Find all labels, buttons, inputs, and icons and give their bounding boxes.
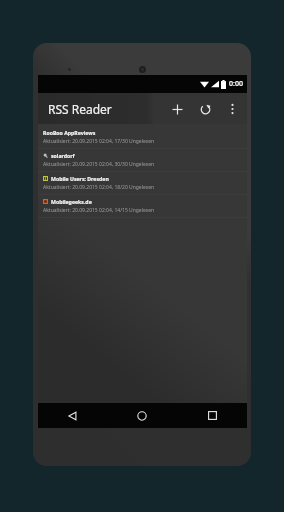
button[interactable]: Add feed	[163, 95, 191, 123]
staticText: Aktualisiert: 20.09.2015 02:04, 18/20 Un…	[43, 184, 155, 191]
staticText: Mobilegeeks.de	[51, 198, 92, 205]
button[interactable]: Mobile Users: Dresden	[38, 172, 247, 194]
button[interactable]: RooBoo AppReviews	[38, 126, 247, 148]
staticText: Aktualisiert: 20.09.2015 02:04, 14/15 Un…	[43, 207, 155, 214]
staticText: RooBoo AppReviews	[43, 129, 96, 136]
staticText: 0:00	[229, 79, 243, 89]
staticText: Mobile Users: Dresden	[51, 175, 109, 182]
staticText: Aktualisiert: 20.09.2015 02:04, 17/30 Un…	[43, 138, 155, 145]
button[interactable]: solardorf	[38, 149, 247, 171]
staticText: Aktualisiert: 20.09.2015 02:04, 30/30 Un…	[43, 161, 155, 168]
button[interactable]: Home	[107, 403, 177, 428]
button[interactable]: Refresh	[191, 95, 219, 123]
button[interactable]: More options	[219, 96, 245, 122]
staticText: RSS Reader	[48, 101, 112, 117]
button[interactable]: Back	[38, 403, 107, 428]
staticText: solardorf	[51, 152, 75, 159]
button[interactable]: Recent apps	[177, 403, 247, 428]
button[interactable]: Mobilegeeks.de	[38, 195, 247, 217]
